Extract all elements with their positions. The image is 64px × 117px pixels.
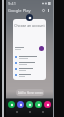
- button[interactable]: App: [44, 101, 51, 108]
- button[interactable]: [15, 60, 44, 66]
- staticText: Add to Home screen: [18, 91, 43, 95]
- button[interactable]: [15, 66, 44, 72]
- button[interactable]: Navigation: [14, 109, 19, 114]
- button[interactable]: More options: [46, 8, 51, 13]
- button[interactable]: [15, 54, 44, 60]
- button[interactable]: [15, 72, 44, 78]
- staticText: Google Play: [8, 8, 31, 13]
- staticText: 9:41: [8, 1, 16, 6]
- button[interactable]: Search: [41, 8, 46, 13]
- button[interactable]: Navigation: [40, 109, 45, 114]
- button[interactable]: Navigation: [27, 109, 32, 114]
- button[interactable]: Add to Home screen: [16, 89, 44, 96]
- button[interactable]: App: [35, 101, 42, 108]
- button[interactable]: App: [26, 101, 33, 108]
- staticText: Choose an account: [13, 23, 46, 28]
- button[interactable]: [15, 44, 44, 52]
- button[interactable]: App: [17, 101, 24, 108]
- button[interactable]: App: [8, 101, 15, 108]
